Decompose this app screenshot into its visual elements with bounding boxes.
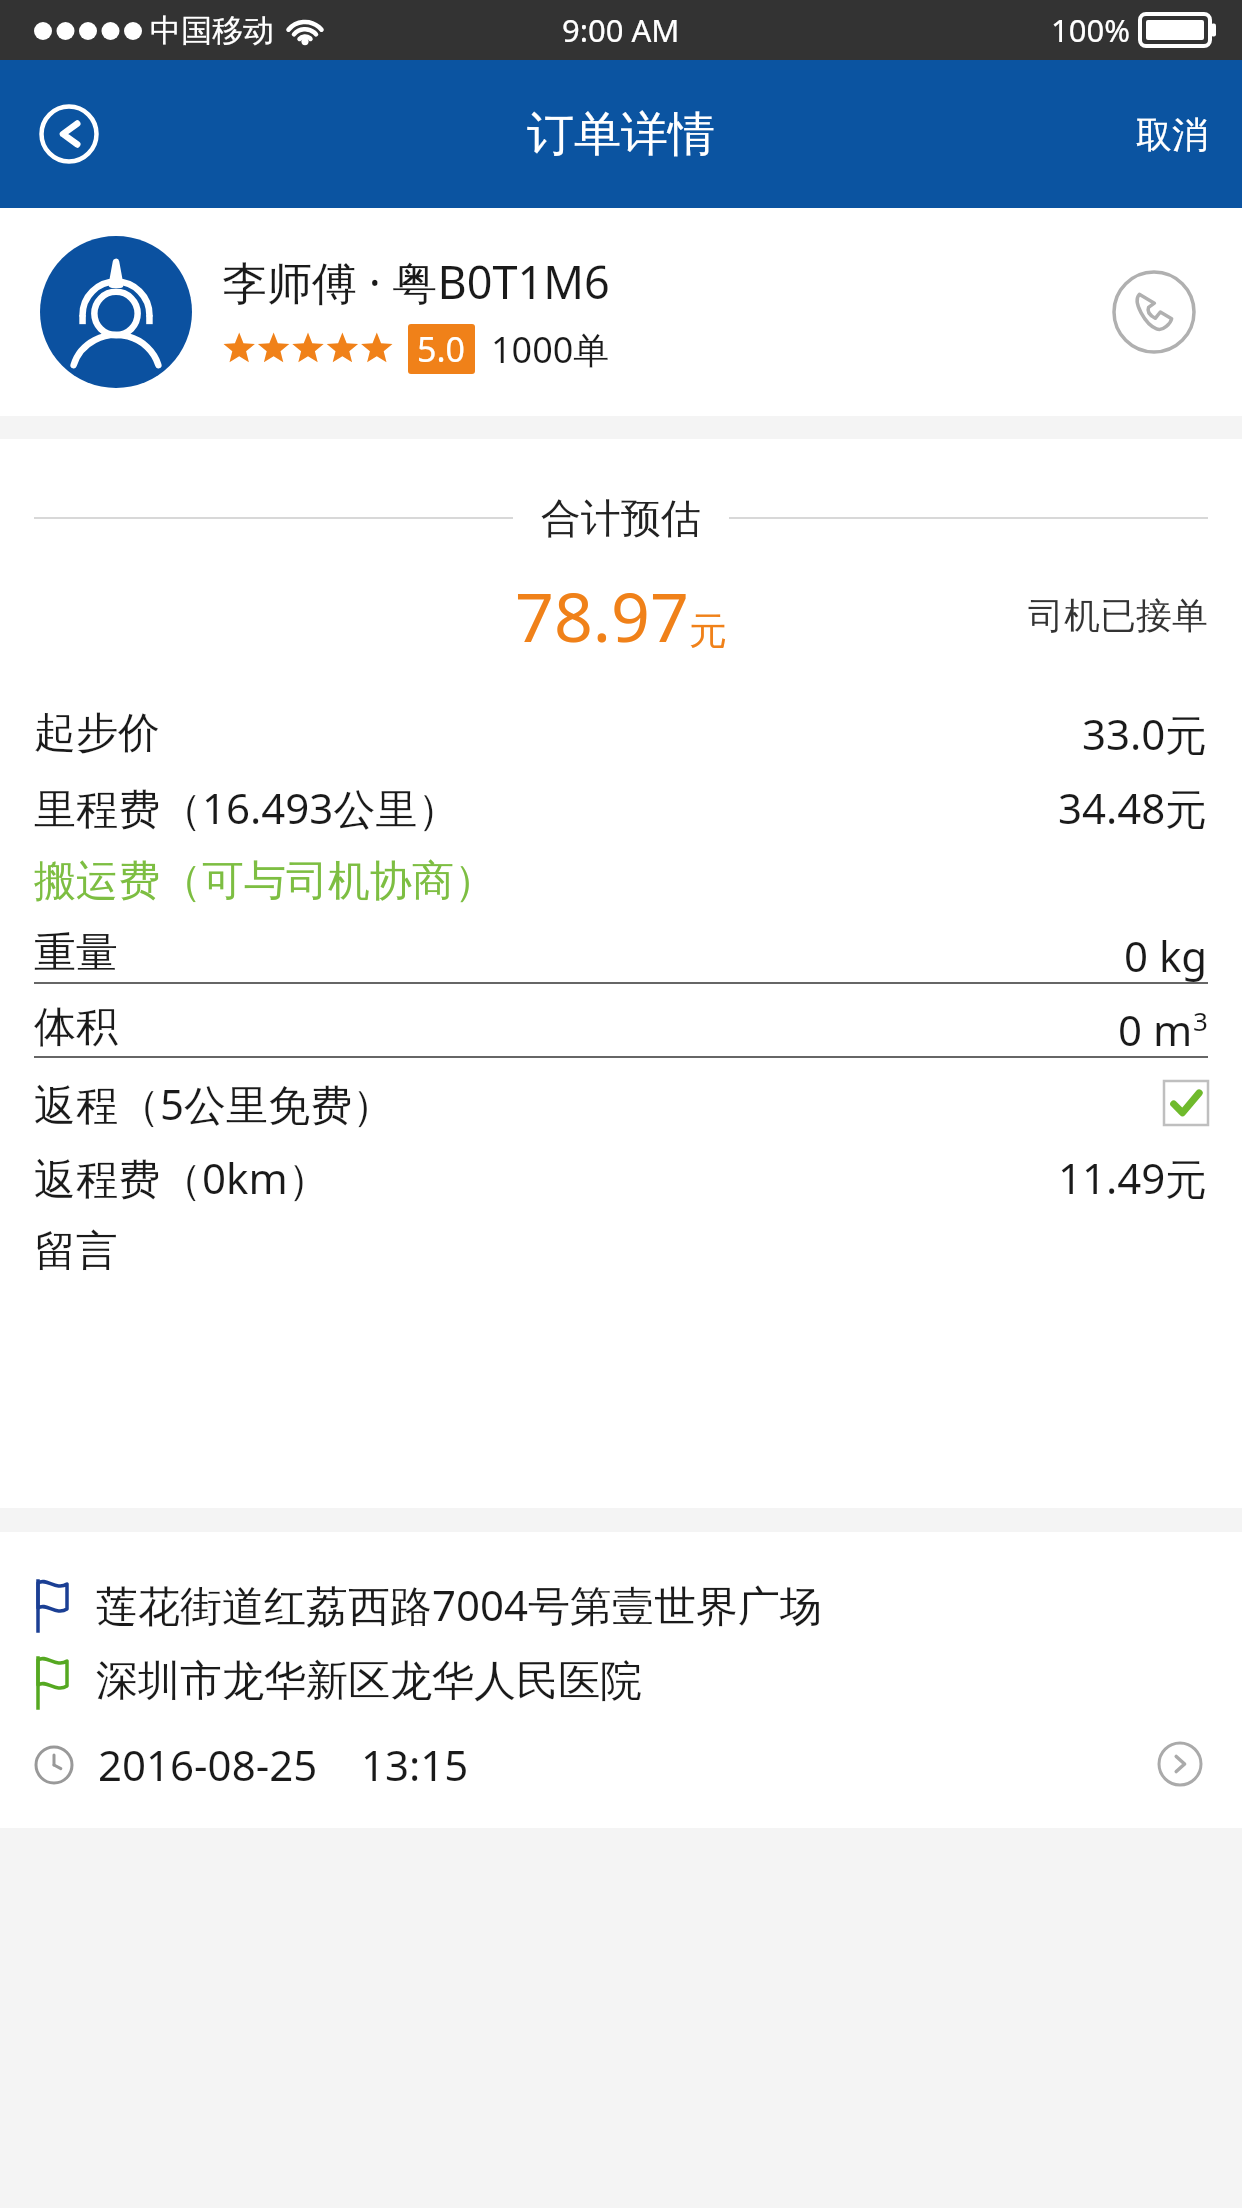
- staticText: 搬运费（可与司机协商）: [34, 855, 496, 908]
- staticText: 取消: [1136, 112, 1208, 157]
- button[interactable]: 返程费（0km）: [0, 1140, 1242, 1214]
- staticText: 1000单: [491, 325, 610, 374]
- staticText: 0 m: [1118, 1001, 1193, 1058]
- staticText: 9:00 AM: [562, 9, 680, 51]
- staticText: 重量: [34, 927, 118, 980]
- staticText: 100%: [1051, 9, 1130, 51]
- staticText: 3: [1193, 1003, 1208, 1038]
- staticText: 李师傅 · 粤B0T1M6: [222, 251, 610, 312]
- staticText: 返程（5公里免费）: [34, 1075, 395, 1132]
- staticText: 莲花街道红荔西路7004号第壹世界广场: [96, 1576, 823, 1633]
- staticText: 2016-08-25 13:15: [98, 1736, 469, 1793]
- staticText: 34.48元: [1058, 779, 1208, 836]
- button[interactable]: 搬运费（可与司机协商）: [0, 844, 1242, 918]
- staticText: 留言: [34, 1225, 118, 1278]
- staticText: 中国移动: [150, 11, 274, 50]
- staticText: 5.0: [417, 326, 466, 372]
- staticText: 78.97: [515, 569, 689, 662]
- other: Return trip enabled: [1164, 1081, 1208, 1125]
- staticText: 返程费（0km）: [34, 1149, 330, 1206]
- button[interactable]: 里程费（16.493公里）: [0, 770, 1242, 844]
- staticText: 11.49元: [1058, 1149, 1208, 1206]
- button[interactable]: Back: [22, 87, 116, 181]
- button[interactable]: 留言: [0, 1214, 1242, 1288]
- staticText: 合计预估: [541, 493, 701, 543]
- button[interactable]: Call driver: [1106, 264, 1202, 360]
- staticText: 起步价: [34, 707, 160, 760]
- button[interactable]: 取消: [1118, 96, 1226, 173]
- staticText: 33.0元: [1082, 705, 1208, 762]
- button[interactable]: 起步价: [0, 696, 1242, 770]
- staticText: 里程费（16.493公里）: [34, 779, 460, 836]
- staticText: 体积: [34, 1001, 118, 1054]
- staticText: 0 kg: [1124, 927, 1208, 984]
- button[interactable]: 李师傅 · 粤B0T1M6: [0, 208, 1242, 416]
- staticText: 元: [689, 607, 727, 655]
- staticText: 司机已接单: [1028, 593, 1208, 638]
- staticText: 订单详情: [527, 105, 715, 164]
- button[interactable]: 莲花街道红荔西路7004号第壹世界广场: [0, 1532, 1242, 1828]
- button[interactable]: 体积: [0, 992, 1242, 1066]
- staticText: 深圳市龙华新区龙华人民医院: [96, 1655, 642, 1708]
- button[interactable]: 重量: [0, 918, 1242, 992]
- button[interactable]: 返程（5公里免费）: [0, 1066, 1242, 1140]
- other: More details: [1152, 1736, 1208, 1792]
